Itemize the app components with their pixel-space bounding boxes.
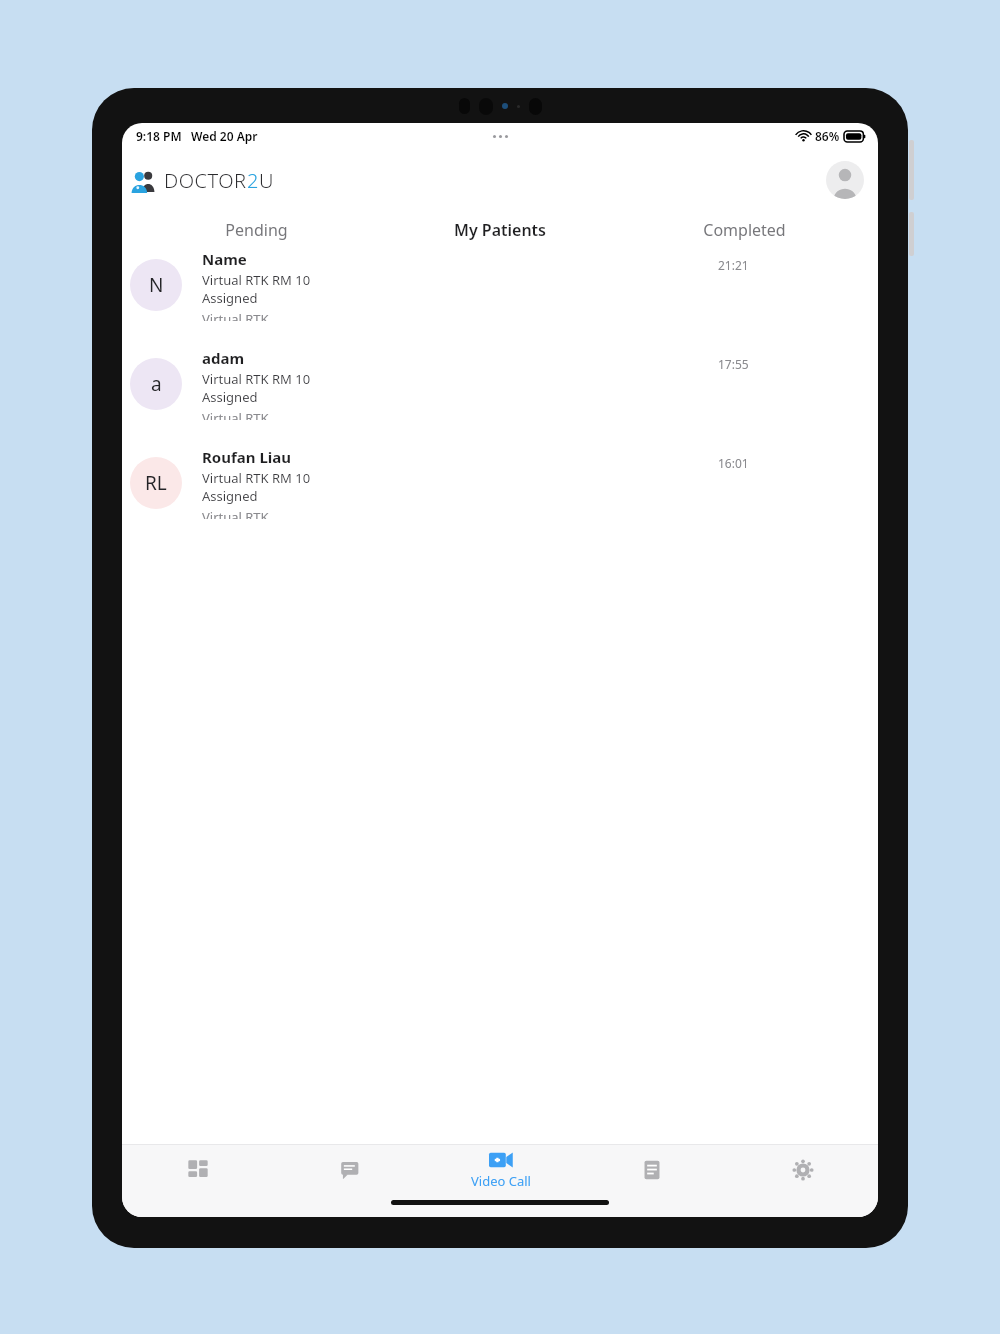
button[interactable]: DOCTOR — [130, 167, 274, 194]
button[interactable]: Completed — [622, 211, 866, 249]
staticText: 2 — [247, 167, 259, 194]
button[interactable]: Pending — [134, 211, 378, 249]
staticText: 9:18 PM — [136, 128, 182, 144]
staticText: Video Call — [471, 1172, 531, 1190]
staticText: RL — [145, 470, 167, 496]
staticText: 21:21 — [718, 257, 749, 273]
staticText: adam — [202, 348, 245, 368]
staticText: 16:01 — [718, 455, 749, 471]
staticText: Assigned — [202, 487, 258, 505]
staticText: Virtual RTK — [202, 310, 269, 321]
button[interactable]: My Patients — [378, 211, 622, 249]
staticText: Virtual RTK RM 10 — [202, 469, 311, 487]
staticText: Pending — [225, 219, 288, 241]
button[interactable]: Video Call — [425, 1145, 576, 1195]
button[interactable]: Messages — [274, 1145, 425, 1195]
button[interactable]: Settings — [727, 1145, 878, 1195]
staticText: DOCTOR — [164, 167, 247, 194]
staticText: Assigned — [202, 289, 258, 307]
staticText: My Patients — [454, 219, 546, 241]
staticText: Roufan Liau — [202, 447, 292, 467]
staticText: 17:55 — [718, 356, 749, 372]
staticText: Completed — [703, 219, 786, 241]
staticText: 86% — [815, 128, 840, 144]
button[interactable]: N — [122, 249, 878, 321]
staticText: Assigned — [202, 388, 258, 406]
button[interactable]: Profile — [826, 161, 864, 199]
button[interactable]: Dashboard — [122, 1145, 274, 1195]
staticText: Virtual RTK RM 10 — [202, 370, 311, 388]
staticText: N — [149, 272, 164, 298]
staticText: Virtual RTK — [202, 409, 269, 420]
staticText: Virtual RTK — [202, 508, 269, 519]
staticText: U — [259, 167, 274, 194]
staticText: a — [151, 371, 162, 397]
staticText: Name — [202, 249, 247, 269]
button[interactable]: RL — [122, 447, 878, 519]
button[interactable]: a — [122, 348, 878, 420]
button[interactable]: Documents — [576, 1145, 727, 1195]
staticText: Wed 20 Apr — [191, 128, 258, 144]
staticText: Virtual RTK RM 10 — [202, 271, 311, 289]
